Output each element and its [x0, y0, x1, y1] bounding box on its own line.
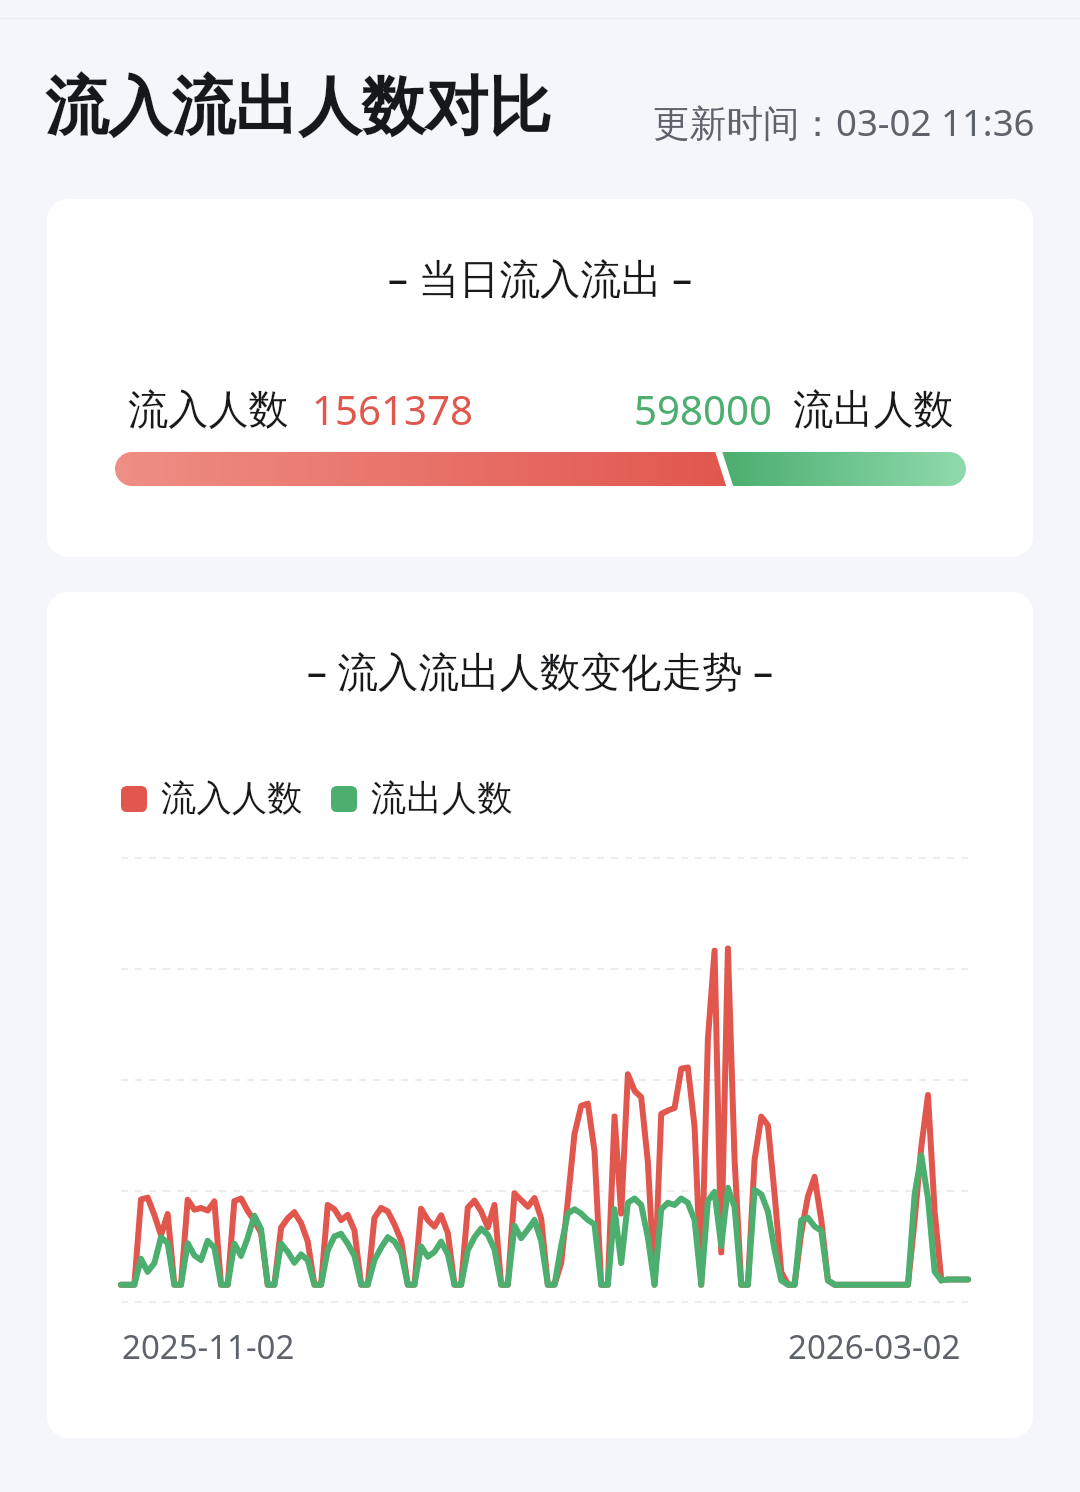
staticText: 2025-11-02	[122, 1324, 295, 1369]
staticText: 2026-03-02	[788, 1324, 961, 1369]
staticText: – 当日流入流出 –	[47, 250, 1033, 305]
staticText: 流出人数	[793, 384, 954, 435]
staticText: – 流入流出人数变化走势 –	[47, 643, 1033, 698]
staticText: 流入人数	[128, 384, 289, 435]
staticText: 1561378	[312, 382, 473, 437]
staticText: 流入流出人数对比	[45, 67, 552, 147]
staticText: 流入人数	[161, 776, 303, 821]
staticText: 598000	[634, 382, 772, 437]
staticText: 更新时间：03-02 11:36	[653, 97, 1035, 147]
staticText: 流出人数	[371, 776, 513, 821]
button[interactable]: – 流入流出人数变化走势 –	[47, 592, 1033, 1438]
button[interactable]: – 当日流入流出 –	[47, 199, 1033, 557]
